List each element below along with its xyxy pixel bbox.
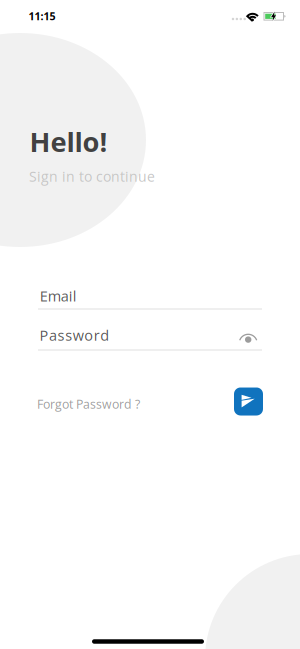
staticText: Email	[40, 286, 77, 306]
staticText: 11:15	[28, 9, 55, 23]
staticText: Sign in to continue	[29, 167, 155, 186]
button[interactable]: Forgot Password ?	[37, 396, 149, 412]
staticText: Forgot Password ?	[37, 396, 140, 412]
button[interactable]: Sign In	[234, 387, 263, 415]
staticText: Hello!	[29, 123, 107, 160]
staticText: Password	[39, 325, 109, 345]
button[interactable]: Show password	[237, 332, 259, 350]
